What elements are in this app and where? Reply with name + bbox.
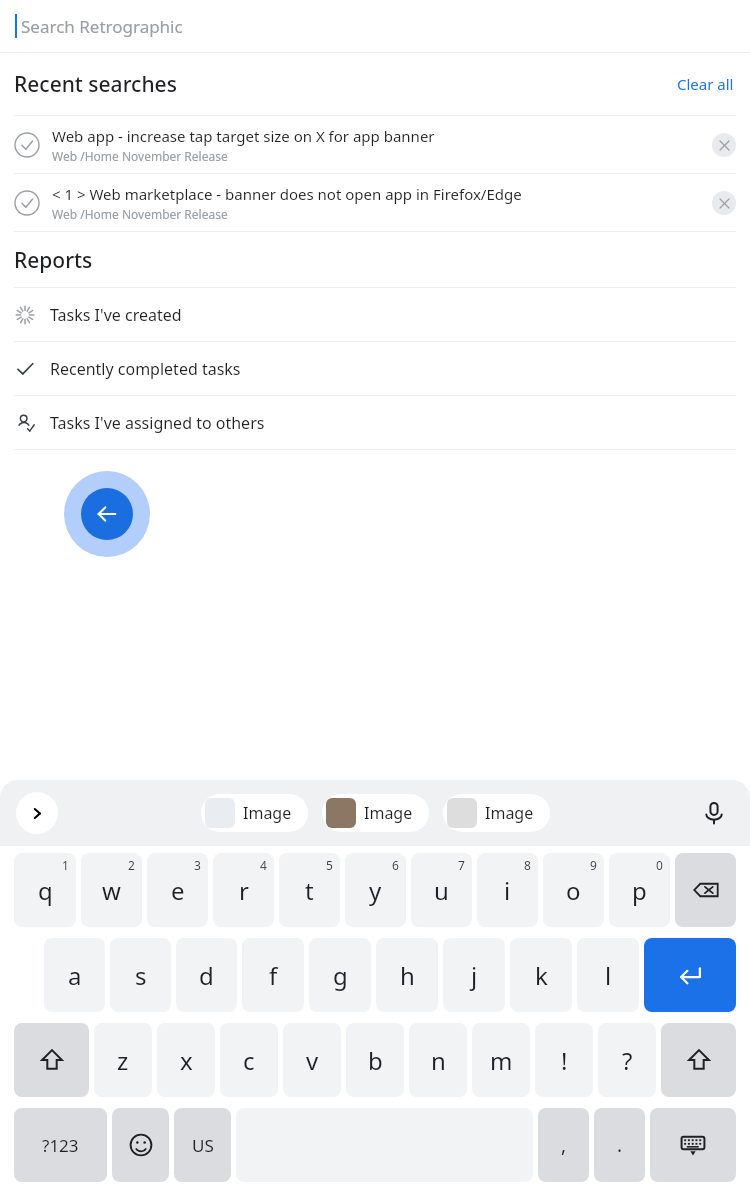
staticText: . [617, 1132, 623, 1158]
button[interactable]: Tasks I've created [0, 288, 750, 341]
button[interactable]: Enter [644, 938, 736, 1012]
button[interactable]: Shift [661, 1023, 736, 1097]
staticText: Web app - increase tap target size on X … [52, 126, 435, 146]
staticText: Image [364, 802, 413, 824]
button[interactable]: Recently completed tasks [0, 342, 750, 395]
button[interactable]: Back [64, 471, 150, 557]
button[interactable]: ! [535, 1023, 593, 1097]
staticText: u [434, 874, 449, 907]
button[interactable]: < 1 > Web marketplace - banner does not … [0, 174, 750, 231]
staticText: Tasks I've assigned to others [50, 412, 265, 434]
staticText: o [566, 874, 581, 907]
staticText: l [605, 959, 612, 992]
staticText: w [102, 874, 121, 907]
staticText: e [171, 874, 185, 907]
staticText: Web /Home November Release [52, 206, 228, 222]
button[interactable]: k [510, 938, 572, 1012]
staticText: 0 [656, 857, 663, 873]
staticText: i [504, 874, 511, 907]
button[interactable]: w [81, 853, 142, 927]
button[interactable]: Web app - increase tap target size on X … [0, 116, 750, 173]
button[interactable]: o [543, 853, 604, 927]
staticText: z [117, 1044, 129, 1077]
staticText: Reports [14, 246, 93, 275]
button[interactable]: g [309, 938, 371, 1012]
staticText: v [306, 1044, 319, 1077]
staticText: 4 [260, 857, 267, 873]
staticText: y [369, 874, 382, 907]
button[interactable]: , [538, 1108, 589, 1182]
button[interactable]: e [147, 853, 208, 927]
staticText: 2 [128, 857, 135, 873]
staticText: t [305, 874, 314, 907]
staticText: j [471, 959, 478, 992]
button[interactable]: Clear all [675, 72, 736, 96]
button[interactable]: h [376, 938, 438, 1012]
staticText: 9 [590, 857, 597, 873]
staticText: b [368, 1044, 383, 1077]
button[interactable]: Voice input [694, 793, 734, 833]
staticText: q [38, 874, 53, 907]
staticText: c [243, 1044, 255, 1077]
button[interactable]: u [411, 853, 472, 927]
staticText: Web /Home November Release [52, 148, 228, 164]
staticText: g [333, 959, 348, 992]
staticText: 6 [392, 857, 399, 873]
staticText: Search Retrographic [21, 15, 183, 38]
button[interactable]: b [346, 1023, 404, 1097]
staticText: < 1 > Web marketplace - banner does not … [52, 184, 522, 204]
button[interactable]: s [110, 938, 171, 1012]
button[interactable]: Expand toolbar [16, 792, 58, 834]
button[interactable]: . [594, 1108, 645, 1182]
button[interactable]: n [409, 1023, 467, 1097]
staticText: k [535, 959, 548, 992]
button[interactable]: Search Retrographic [0, 0, 750, 52]
button[interactable]: j [443, 938, 505, 1012]
button[interactable]: p [609, 853, 670, 927]
staticText: Clear all [677, 74, 734, 94]
button[interactable]: ?123 [14, 1108, 107, 1182]
staticText: 8 [524, 857, 531, 873]
button[interactable]: i [477, 853, 538, 927]
button[interactable]: m [472, 1023, 530, 1097]
staticText: 5 [326, 857, 333, 873]
button[interactable]: z [94, 1023, 152, 1097]
staticText: , [561, 1132, 567, 1158]
button[interactable]: r [213, 853, 274, 927]
button[interactable]: x [157, 1023, 215, 1097]
button[interactable]: Remove [712, 133, 736, 157]
button[interactable]: a [44, 938, 105, 1012]
staticText: s [135, 959, 147, 992]
button[interactable]: Shift [14, 1023, 89, 1097]
button[interactable]: Image [443, 794, 550, 832]
button[interactable]: c [220, 1023, 278, 1097]
button[interactable]: US [174, 1108, 231, 1182]
staticText: Image [485, 802, 534, 824]
button[interactable]: v [283, 1023, 341, 1097]
button[interactable]: y [345, 853, 406, 927]
button[interactable]: Backspace [675, 853, 736, 927]
staticText: f [269, 959, 278, 992]
staticText: 3 [194, 857, 201, 873]
staticText: ! [561, 1044, 568, 1077]
staticText: n [431, 1044, 446, 1077]
staticText: d [199, 959, 214, 992]
staticText: a [68, 959, 82, 992]
button[interactable]: Tasks I've assigned to others [0, 396, 750, 449]
button[interactable]: d [176, 938, 237, 1012]
button[interactable]: Image [322, 794, 429, 832]
button[interactable]: l [577, 938, 639, 1012]
staticText: ?123 [42, 1134, 79, 1157]
button[interactable]: t [279, 853, 340, 927]
button[interactable]: f [242, 938, 304, 1012]
button[interactable]: q [14, 853, 76, 927]
button[interactable]: Image [201, 794, 308, 832]
staticText: 7 [458, 857, 465, 873]
button[interactable]: Remove [712, 191, 736, 215]
button[interactable]: Hide keyboard [650, 1108, 736, 1182]
staticText: Image [243, 802, 292, 824]
button[interactable]: Emoji [112, 1108, 169, 1182]
button[interactable]: ? [598, 1023, 656, 1097]
staticText: p [632, 874, 647, 907]
